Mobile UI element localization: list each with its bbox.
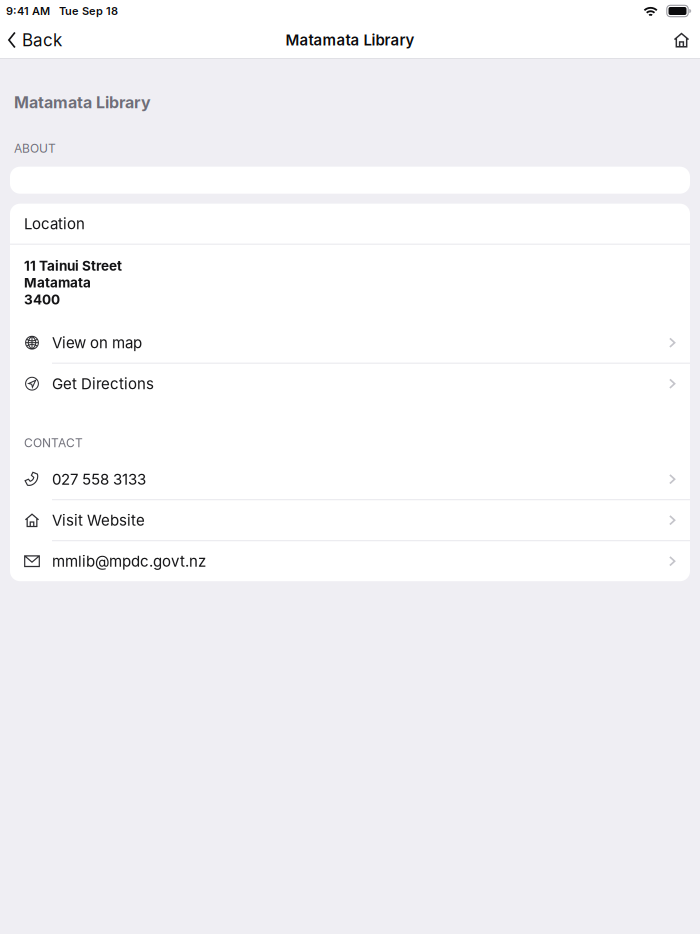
staticText: Tue Sep 18 [59,4,118,18]
staticText: 11 Tainui Street [24,258,122,274]
button[interactable]: mmlib@mpdc.govt.nz [10,541,690,581]
button[interactable]: Back [0,22,72,58]
button[interactable]: View on map [10,323,690,363]
button[interactable]: Home [665,22,700,58]
staticText: 9:41 AM [6,4,50,18]
staticText: View on map [52,334,142,352]
staticText: 027 558 3133 [52,470,146,488]
staticText: ABOUT [14,141,56,156]
staticText: Back [22,30,62,50]
staticText: Matamata [24,274,91,291]
button[interactable]: Get Directions [10,364,690,404]
button[interactable]: Visit Website [10,500,690,540]
staticText: Get Directions [52,375,154,393]
staticText: 3400 [24,291,60,308]
staticText: Matamata Library [285,31,414,49]
button[interactable]: 027 558 3133 [10,459,690,499]
staticText: mmlib@mpdc.govt.nz [52,552,206,570]
staticText: Visit Website [52,511,145,529]
staticText: Matamata Library [14,93,151,112]
staticText: Location [24,215,85,233]
staticText: CONTACT [24,436,83,450]
